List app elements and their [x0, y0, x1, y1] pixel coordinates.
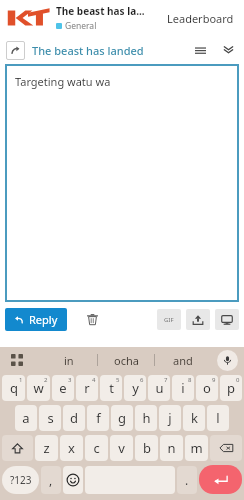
- button[interactable]: Menu: [190, 40, 210, 60]
- button[interactable]: ocha: [98, 347, 154, 373]
- button[interactable]: Share screen: [215, 309, 239, 330]
- button[interactable]: d: [63, 405, 85, 431]
- staticText: z: [43, 439, 50, 457]
- button[interactable]: ?123: [2, 466, 39, 494]
- staticText: 5: [116, 376, 120, 384]
- staticText: u: [155, 379, 164, 397]
- button[interactable]: in: [40, 347, 97, 373]
- staticText: m: [190, 439, 203, 457]
- staticText: b: [143, 439, 151, 457]
- button[interactable]: u: [148, 375, 170, 401]
- staticText: y: [132, 379, 139, 397]
- button[interactable]: o: [196, 375, 218, 401]
- staticText: ocha: [114, 353, 139, 368]
- staticText: x: [68, 439, 75, 457]
- staticText: General: [65, 20, 97, 32]
- staticText: ?123: [10, 473, 32, 487]
- staticText: d: [70, 409, 78, 427]
- staticText: t: [109, 379, 114, 397]
- button[interactable]: Delete: [81, 308, 103, 330]
- button[interactable]: and: [155, 347, 211, 373]
- staticText: l: [216, 409, 220, 427]
- staticText: 6: [140, 376, 144, 384]
- button[interactable]: m: [185, 435, 208, 461]
- button[interactable]: l: [207, 405, 229, 431]
- button[interactable]: Insert GIF: [157, 309, 181, 330]
- staticText: v: [118, 439, 125, 457]
- staticText: .: [185, 472, 189, 488]
- staticText: c: [93, 439, 100, 457]
- staticText: h: [142, 409, 151, 427]
- button[interactable]: Expand: [218, 40, 238, 60]
- button[interactable]: b: [135, 435, 158, 461]
- staticText: o: [203, 379, 211, 397]
- button[interactable]: x: [60, 435, 83, 461]
- button[interactable]: n: [160, 435, 183, 461]
- button[interactable]: z: [35, 435, 58, 461]
- staticText: Targeting watu wa: [15, 74, 111, 89]
- staticText: Reply: [29, 312, 58, 327]
- button[interactable]: The beast has landed: [32, 43, 190, 58]
- staticText: and: [173, 353, 193, 368]
- button[interactable]: Voice input: [217, 350, 238, 371]
- staticText: n: [167, 439, 176, 457]
- staticText: 2: [44, 376, 48, 384]
- staticText: GIF: [164, 316, 174, 324]
- button[interactable]: j: [159, 405, 181, 431]
- button[interactable]: k: [183, 405, 205, 431]
- button[interactable]: Reply: [5, 308, 67, 331]
- button[interactable]: Targeting watu wa: [5, 64, 239, 302]
- button[interactable]: a: [15, 405, 37, 431]
- staticText: 4: [92, 376, 96, 384]
- button[interactable]: g: [111, 405, 133, 431]
- staticText: f: [96, 409, 101, 427]
- button[interactable]: e: [52, 375, 74, 401]
- staticText: r: [84, 379, 90, 397]
- staticText: ,: [49, 472, 53, 488]
- staticText: e: [59, 379, 67, 397]
- staticText: 7: [164, 376, 168, 384]
- button[interactable]: i: [172, 375, 194, 401]
- button[interactable]: Upload file: [186, 309, 210, 330]
- button[interactable]: t: [100, 375, 122, 401]
- button[interactable]: Reply: [6, 41, 25, 60]
- staticText: j: [168, 409, 172, 427]
- staticText: 1: [19, 376, 23, 384]
- button[interactable]: q: [2, 375, 25, 401]
- button[interactable]: Enter: [199, 465, 242, 494]
- button[interactable]: h: [135, 405, 157, 431]
- button[interactable]: v: [110, 435, 133, 461]
- staticText: a: [22, 409, 30, 427]
- button[interactable]: p: [220, 375, 242, 401]
- button[interactable]: Emoji: [63, 466, 83, 494]
- staticText: k: [191, 409, 198, 427]
- button[interactable]: r: [76, 375, 98, 401]
- button[interactable]: s: [39, 405, 61, 431]
- staticText: w: [33, 379, 44, 397]
- staticText: g: [118, 409, 126, 427]
- button[interactable]: Apps: [6, 349, 28, 371]
- staticText: in: [64, 353, 74, 368]
- staticText: i: [181, 379, 185, 397]
- button[interactable]: Shift: [2, 435, 33, 461]
- button[interactable]: Leaderboard: [163, 11, 238, 26]
- staticText: q: [10, 379, 18, 397]
- button[interactable]: y: [124, 375, 146, 401]
- staticText: 0: [236, 376, 240, 384]
- button[interactable]: .: [177, 466, 197, 494]
- staticText: p: [227, 379, 235, 397]
- button[interactable]: Backspace: [210, 435, 242, 461]
- staticText: 3: [68, 376, 72, 384]
- button[interactable]: c: [85, 435, 108, 461]
- staticText: The beast has la...: [56, 4, 145, 18]
- button[interactable]: ,: [41, 466, 61, 494]
- staticText: Leaderboard: [167, 11, 234, 26]
- button[interactable]: w: [27, 375, 50, 401]
- staticText: 9: [212, 376, 216, 384]
- staticText: s: [47, 409, 54, 427]
- staticText: 8: [188, 376, 192, 384]
- button[interactable]: f: [87, 405, 109, 431]
